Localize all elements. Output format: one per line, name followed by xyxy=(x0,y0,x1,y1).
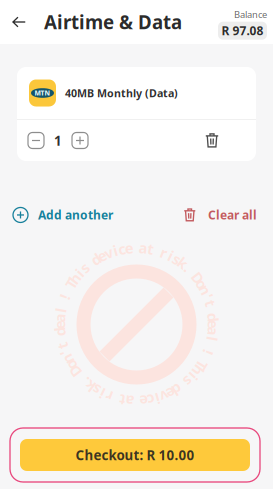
staticText: d xyxy=(132,238,141,257)
button[interactable]: Add another xyxy=(13,201,113,229)
staticText: Balance xyxy=(234,8,267,21)
staticText: e xyxy=(132,238,141,257)
staticText: a xyxy=(132,238,141,257)
staticText: a xyxy=(132,238,141,257)
staticText: T xyxy=(132,238,140,257)
staticText: s xyxy=(133,238,140,257)
staticText: Clear all xyxy=(208,207,257,223)
staticText: h xyxy=(131,238,141,257)
staticText: e xyxy=(132,238,141,257)
staticText: 40MB Monthly (Data) xyxy=(65,86,178,100)
staticText: s xyxy=(133,238,140,257)
button[interactable]: Back xyxy=(6,8,32,36)
button[interactable]: Increase quantity xyxy=(67,126,88,154)
staticText: v xyxy=(132,238,140,257)
staticText: n xyxy=(131,238,141,257)
staticText: e xyxy=(132,238,141,257)
staticText: a xyxy=(132,238,141,257)
staticText: d xyxy=(132,238,141,257)
staticText: t xyxy=(133,238,139,257)
staticText: 1 xyxy=(54,132,62,149)
staticText: k xyxy=(132,238,141,257)
staticText: D xyxy=(131,238,142,257)
staticText: t xyxy=(133,238,139,257)
button[interactable]: Decrease quantity xyxy=(28,126,49,154)
staticText: o xyxy=(132,238,141,257)
staticText: v xyxy=(132,238,140,257)
staticText: e xyxy=(132,238,141,257)
staticText: s xyxy=(133,238,140,257)
staticText: d xyxy=(132,238,141,257)
staticText: s xyxy=(133,238,140,257)
staticText: r xyxy=(133,238,140,257)
staticText: MTN xyxy=(34,89,50,97)
staticText: D xyxy=(131,238,142,257)
staticText: a xyxy=(132,238,141,257)
staticText: o xyxy=(132,238,141,257)
staticText: T xyxy=(132,238,140,257)
staticText: h xyxy=(131,238,141,257)
staticText: e xyxy=(132,238,141,257)
staticText: c xyxy=(132,238,140,257)
staticText: R 97.08 xyxy=(221,23,263,39)
button[interactable]: Remove item xyxy=(201,127,223,153)
button[interactable]: Checkout: R 10.00 xyxy=(10,428,260,482)
staticText: Add another xyxy=(38,207,113,223)
staticText: t xyxy=(133,238,139,257)
staticText: t xyxy=(133,238,139,257)
staticText: k xyxy=(132,238,141,257)
staticText: n xyxy=(131,238,141,257)
button[interactable]: Clear all xyxy=(183,201,257,229)
staticText: r xyxy=(133,238,140,257)
staticText: e xyxy=(132,238,141,257)
staticText: d xyxy=(132,238,141,257)
staticText: c xyxy=(132,238,140,257)
staticText: Checkout: R 10.00 xyxy=(75,446,194,464)
staticText: Airtime & Data xyxy=(44,10,182,34)
